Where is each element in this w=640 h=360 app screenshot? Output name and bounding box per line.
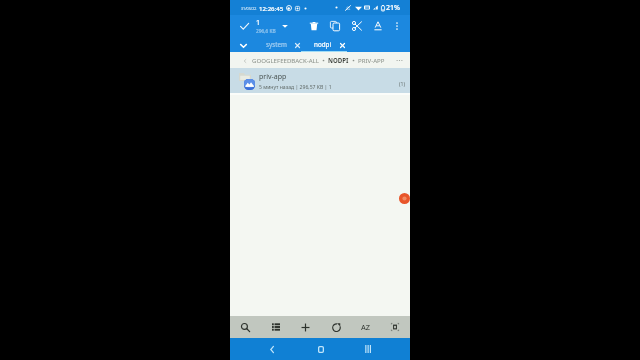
staticText: AZ	[361, 322, 371, 332]
button[interactable]: Up	[241, 57, 248, 64]
button[interactable]: Close system tab	[292, 40, 302, 50]
button[interactable]: New	[296, 318, 314, 336]
staticText: 31/05/22	[241, 6, 257, 11]
button[interactable]: More options	[390, 19, 404, 33]
staticText: 1	[256, 17, 261, 27]
button[interactable]: Back	[264, 341, 280, 357]
staticText: 12:26:45	[259, 4, 284, 12]
button[interactable]: Copy	[328, 19, 342, 33]
staticText: 21%	[386, 3, 400, 13]
staticText: (1)	[399, 81, 405, 88]
button[interactable]: priv-app	[230, 68, 410, 93]
staticText: 296,6 KB	[256, 28, 276, 35]
staticText: nodpi	[314, 40, 332, 49]
button[interactable]: system	[263, 37, 303, 52]
button[interactable]: nodpi	[311, 37, 347, 52]
button[interactable]: Selection options	[279, 20, 291, 32]
button[interactable]: GOOGLEFEEDBACK-ALL	[252, 56, 319, 64]
staticText: 5 минут назад | 296,57 KB | 1	[259, 84, 332, 91]
button[interactable]: Rename	[371, 19, 385, 33]
button[interactable]: Home	[313, 341, 329, 357]
button[interactable]: Search	[236, 318, 254, 336]
button[interactable]: Path menu	[394, 55, 405, 66]
button[interactable]: Close nodpi tab	[337, 40, 347, 50]
button[interactable]: Add	[399, 193, 410, 204]
button[interactable]: NODPI	[328, 56, 349, 64]
button[interactable]: Recent apps	[360, 341, 376, 357]
button[interactable]: Show all tabs	[237, 39, 249, 51]
button[interactable]: PRIV-APP	[358, 56, 385, 64]
button[interactable]: Delete	[307, 19, 321, 33]
button[interactable]: Refresh	[327, 318, 345, 336]
button[interactable]: Done	[237, 19, 251, 33]
button[interactable]: Select all	[386, 318, 404, 336]
staticText: priv-app	[259, 72, 287, 82]
button[interactable]: View mode	[267, 318, 285, 336]
staticText: system	[266, 40, 287, 49]
button[interactable]: Cut	[350, 19, 364, 33]
button[interactable]: Sort	[357, 318, 375, 336]
